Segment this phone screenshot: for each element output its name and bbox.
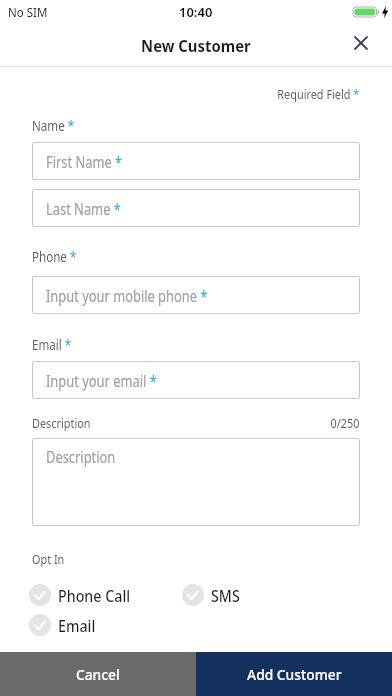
staticText: Input your mobile phone * — [46, 284, 207, 306]
staticText: Input your email * — [46, 369, 157, 391]
staticText: Phone Call — [58, 585, 131, 606]
staticText: Last Name * — [46, 197, 121, 219]
staticText: 10:40 — [179, 3, 213, 21]
staticText: Email * — [32, 334, 71, 354]
staticText: Description — [46, 445, 115, 467]
button[interactable]: Add Customer — [196, 652, 392, 696]
staticText: Required Field * — [277, 86, 360, 103]
button[interactable]: Email — [29, 614, 99, 636]
button[interactable]: Description — [32, 438, 360, 526]
staticText: SMS — [211, 585, 240, 606]
staticText: Description — [32, 415, 91, 432]
button[interactable]: Input your email * — [32, 361, 360, 399]
button[interactable] — [348, 30, 374, 56]
button[interactable]: Cancel — [0, 652, 196, 696]
staticText: Opt In — [32, 551, 65, 568]
staticText: Cancel — [76, 664, 120, 684]
button[interactable]: Phone Call — [29, 584, 137, 606]
button[interactable]: Last Name * — [32, 189, 360, 227]
staticText: No SIM — [8, 4, 48, 21]
button[interactable]: SMS — [182, 584, 243, 606]
button[interactable]: Input your mobile phone * — [32, 276, 360, 314]
staticText: 0/250 — [330, 415, 360, 432]
button[interactable]: First Name * — [32, 142, 360, 180]
staticText: Name * — [32, 115, 74, 135]
staticText: Email — [58, 615, 96, 636]
staticText: First Name * — [46, 150, 122, 172]
staticText: New Customer — [141, 34, 251, 56]
staticText: Phone * — [32, 246, 77, 266]
staticText: Add Customer — [247, 664, 342, 684]
